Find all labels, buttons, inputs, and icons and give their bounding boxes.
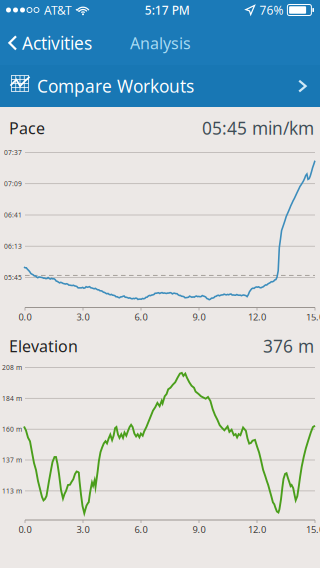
button[interactable]: Activities — [0, 21, 98, 65]
button[interactable]: Compare Workouts — [0, 66, 320, 106]
staticText: 07:37 — [4, 148, 22, 157]
staticText: 137 m — [2, 456, 22, 464]
staticText: 9.0 — [192, 523, 205, 536]
staticText: 05:45 min/km — [202, 116, 314, 139]
staticText: 3.0 — [76, 523, 89, 536]
staticText: 3.0 — [76, 311, 89, 323]
staticText: Pace — [9, 117, 45, 139]
staticText: Elevation — [9, 335, 78, 357]
staticText: 12.0 — [248, 523, 266, 536]
staticText: Activities — [22, 31, 92, 54]
staticText: 12.0 — [248, 311, 266, 323]
staticText: 05:45 — [4, 273, 22, 282]
staticText: Compare Workouts — [37, 74, 194, 97]
staticText: Analysis — [130, 32, 191, 54]
staticText: 0.0 — [18, 311, 31, 323]
staticText: 5:17 PM — [145, 2, 190, 18]
staticText: AT&T — [44, 2, 72, 18]
staticText: 113 m — [2, 486, 22, 495]
staticText: 06:41 — [4, 211, 22, 219]
staticText: 160 m — [2, 425, 22, 434]
staticText: 376 m — [263, 334, 314, 357]
staticText: 9.0 — [192, 311, 205, 323]
staticText: 76% — [259, 2, 283, 18]
staticText: 15.0 — [306, 311, 320, 323]
staticText: 07:09 — [4, 179, 22, 188]
staticText: 6.0 — [134, 523, 147, 536]
staticText: 15.0 — [306, 523, 320, 536]
staticText: 208 m — [2, 363, 22, 372]
staticText: 06:13 — [4, 242, 22, 251]
staticText: 184 m — [2, 394, 22, 403]
staticText: 0.0 — [18, 523, 31, 536]
staticText: 6.0 — [134, 311, 147, 323]
